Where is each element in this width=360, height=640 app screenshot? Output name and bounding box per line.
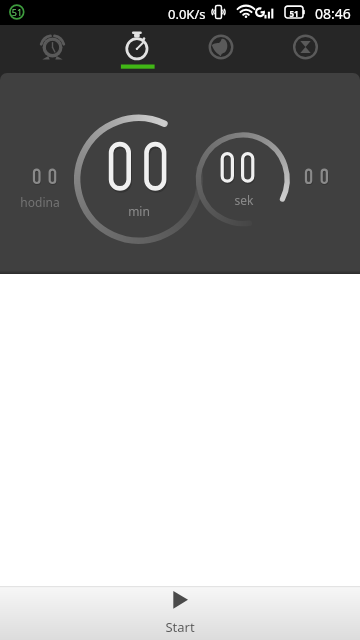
staticText: 51 xyxy=(285,8,303,19)
button[interactable]: World clock xyxy=(180,25,270,73)
button[interactable]: Timer xyxy=(270,25,360,73)
staticText: 08:46 xyxy=(315,4,351,23)
staticText: 51 xyxy=(11,6,23,18)
staticText: 0.0K/s xyxy=(168,5,206,23)
button[interactable]: Set timer xyxy=(0,73,360,274)
button[interactable]: Stopwatch xyxy=(90,25,180,73)
staticText: sek xyxy=(214,192,274,208)
button[interactable]: Start xyxy=(0,586,360,640)
staticText: hodina xyxy=(10,194,70,210)
button[interactable]: Alarm xyxy=(0,25,90,73)
staticText: min xyxy=(109,203,169,219)
staticText: Start xyxy=(150,618,210,636)
